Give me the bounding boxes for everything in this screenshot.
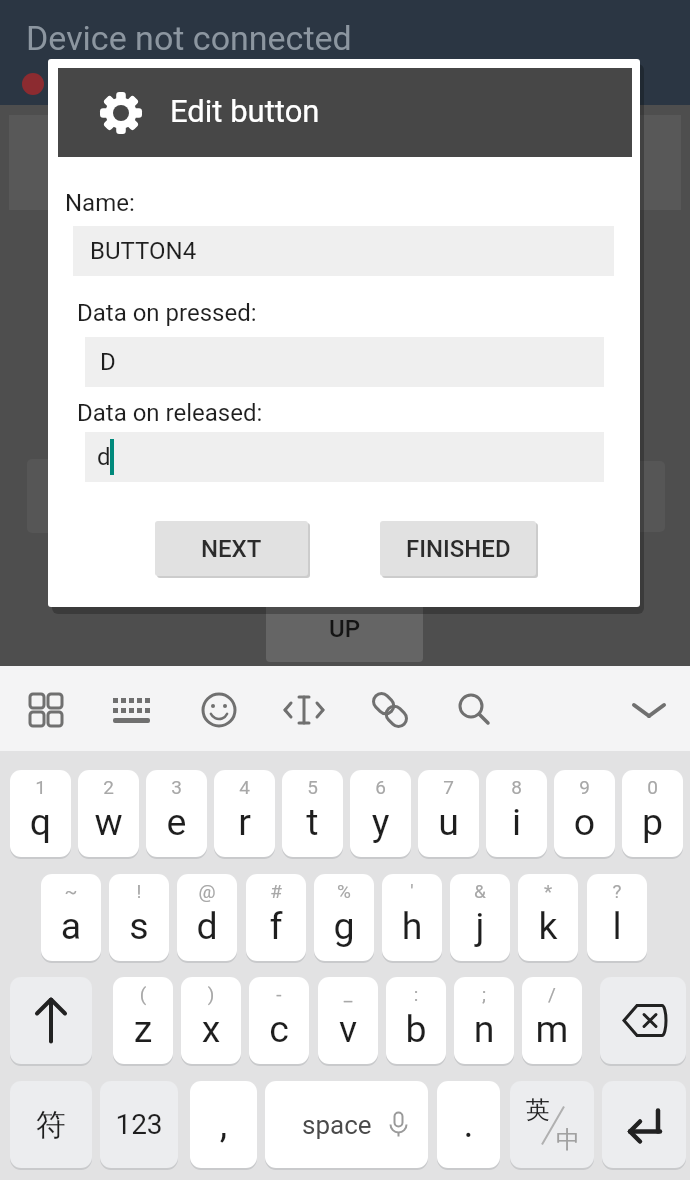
staticText: x — [181, 1007, 241, 1051]
button[interactable]: @ — [177, 874, 237, 961]
staticText: y — [350, 800, 411, 844]
staticText: # — [246, 880, 306, 902]
staticText: % — [314, 880, 374, 902]
staticText: 2 — [78, 776, 139, 798]
button[interactable]: 9 — [554, 770, 615, 857]
staticText: : — [386, 983, 446, 1005]
button[interactable]: # — [246, 874, 306, 961]
staticText: l — [587, 904, 647, 948]
button[interactable]: / — [522, 977, 582, 1064]
button[interactable]: 6 — [350, 770, 411, 857]
staticText: k — [518, 904, 578, 948]
button[interactable]: space — [265, 1081, 428, 1168]
button[interactable]: ) — [181, 977, 241, 1064]
button[interactable]: ( — [113, 977, 173, 1064]
button[interactable] — [189, 680, 249, 740]
button[interactable]: . — [437, 1081, 500, 1168]
button[interactable]: d — [85, 432, 604, 482]
staticText: 英 — [526, 1095, 550, 1125]
staticText: w — [78, 800, 139, 844]
button[interactable]: 2 — [78, 770, 139, 857]
staticText: 8 — [486, 776, 547, 798]
button[interactable]: ' — [382, 874, 442, 961]
staticText: h — [382, 904, 442, 948]
staticText: ' — [382, 880, 442, 902]
button[interactable]: ! — [109, 874, 169, 961]
staticText: p — [622, 800, 683, 844]
staticText: d — [97, 443, 111, 471]
staticText: Data on pressed: — [77, 299, 257, 327]
staticText: 9 — [554, 776, 615, 798]
staticText: j — [450, 904, 510, 948]
staticText: 中 — [556, 1125, 580, 1155]
staticText: ( — [113, 983, 173, 1005]
button[interactable]: NEXT — [155, 521, 308, 576]
button[interactable]: & — [450, 874, 510, 961]
button[interactable] — [10, 977, 92, 1064]
button[interactable]: 7 — [418, 770, 479, 857]
button[interactable]: BUTTON4 — [73, 226, 614, 276]
button[interactable]: UP — [266, 596, 423, 662]
staticText: f — [246, 904, 306, 948]
button[interactable]: ; — [454, 977, 514, 1064]
button[interactable]: - — [249, 977, 309, 1064]
staticText: UP — [329, 615, 361, 643]
button[interactable]: ? — [587, 874, 647, 961]
button[interactable]: 8 — [486, 770, 547, 857]
staticText: ~ — [41, 880, 101, 902]
button[interactable]: ~ — [41, 874, 101, 961]
button[interactable] — [619, 680, 679, 740]
staticText: space — [302, 1110, 372, 1140]
button[interactable]: % — [314, 874, 374, 961]
staticText: m — [522, 1007, 582, 1051]
staticText: 123 — [100, 1108, 178, 1141]
staticText: D — [100, 348, 116, 376]
button[interactable] — [101, 680, 161, 740]
staticText: b — [386, 1007, 446, 1051]
button[interactable] — [274, 680, 334, 740]
staticText: Data on released: — [77, 399, 263, 427]
staticText: _ — [318, 983, 378, 1005]
staticText: z — [113, 1007, 173, 1051]
button[interactable]: FINISHED — [380, 521, 536, 576]
staticText: t — [282, 800, 343, 844]
button[interactable]: 0 — [622, 770, 683, 857]
button[interactable]: : — [386, 977, 446, 1064]
staticText: , — [190, 1102, 257, 1147]
button[interactable]: 5 — [282, 770, 343, 857]
staticText: 6 — [350, 776, 411, 798]
button[interactable]: 123 — [100, 1081, 178, 1168]
button[interactable]: 英 — [510, 1081, 594, 1168]
button[interactable] — [445, 680, 505, 740]
staticText: q — [10, 800, 71, 844]
button[interactable]: 符 — [10, 1081, 92, 1168]
button[interactable] — [16, 680, 76, 740]
button[interactable]: 4 — [214, 770, 275, 857]
button[interactable]: 3 — [146, 770, 207, 857]
button[interactable] — [602, 1081, 686, 1168]
staticText: * — [518, 880, 578, 902]
button[interactable]: D — [85, 337, 604, 387]
button[interactable]: 1 — [10, 770, 71, 857]
staticText: e — [146, 800, 207, 844]
staticText: v — [318, 1007, 378, 1051]
button[interactable] — [360, 680, 420, 740]
staticText: & — [450, 880, 510, 902]
staticText: Edit button — [170, 93, 320, 129]
staticText: ) — [181, 983, 241, 1005]
staticText: c — [249, 1007, 309, 1051]
staticText: a — [41, 904, 101, 948]
staticText: 5 — [282, 776, 343, 798]
staticText: 符 — [10, 1106, 92, 1144]
button[interactable]: _ — [318, 977, 378, 1064]
staticText: . — [437, 1102, 500, 1147]
button[interactable] — [600, 977, 686, 1064]
button[interactable]: , — [190, 1081, 257, 1168]
button[interactable]: * — [518, 874, 578, 961]
staticText: ! — [109, 880, 169, 902]
staticText: / — [522, 983, 582, 1005]
staticText: BUTTON4 — [90, 237, 197, 265]
staticText: o — [554, 800, 615, 844]
staticText: Name: — [65, 189, 135, 217]
staticText: ? — [587, 880, 647, 902]
